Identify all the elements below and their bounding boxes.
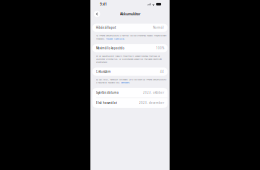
button[interactable]: Gyártás dátuma — [92, 88, 168, 98]
staticText: Az iPhone akkumulátora a normál teljesít… — [96, 34, 166, 40]
staticText: Maximális kapacitás — [96, 46, 124, 50]
button[interactable]: Maximális kapacitás — [92, 44, 168, 52]
staticText: Első használat — [96, 101, 117, 105]
button[interactable]: Első használat — [92, 98, 168, 108]
staticText: Normál — [153, 26, 164, 30]
staticText: Akkumulátor — [120, 12, 140, 16]
button[interactable]: Hibás állapot — [92, 24, 168, 32]
staticText: 44 — [160, 70, 164, 73]
staticText: 100% — [156, 46, 164, 50]
staticText: 2023. december — [139, 101, 164, 105]
button[interactable]: Ciklusszám — [92, 67, 168, 76]
staticText: Gyártás dátuma — [96, 91, 119, 95]
staticText: Ez azt jelzi, hányszor töltődött újra te… — [96, 78, 166, 84]
staticText: 2023. október — [143, 91, 164, 95]
staticText: Ciklusszám — [96, 70, 111, 73]
button[interactable]: Back — [93, 10, 101, 18]
staticText: 9:41 — [100, 2, 107, 6]
staticText: Hibás állapot — [96, 26, 116, 30]
staticText: Ez az akkumulátor ideális maximális kapa… — [96, 54, 162, 64]
